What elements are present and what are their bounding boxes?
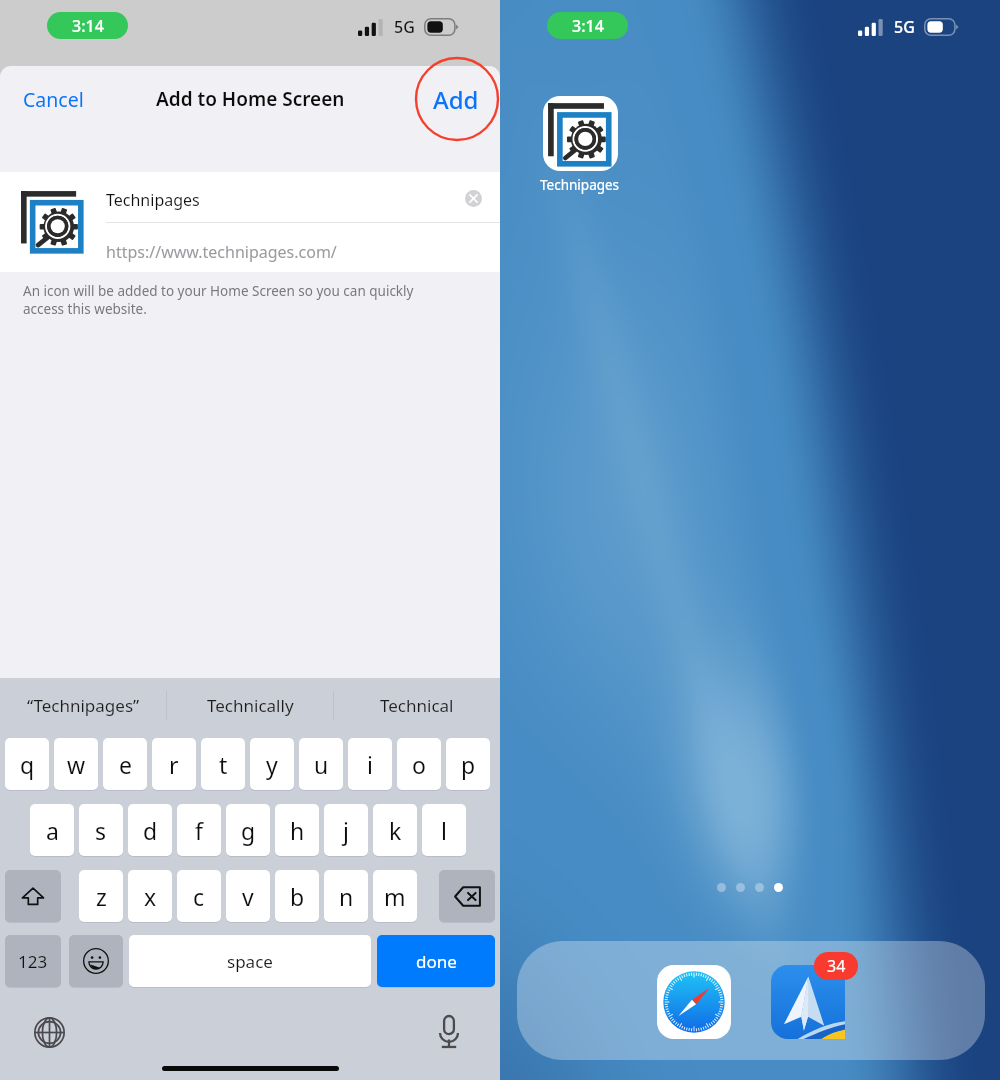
staticText: o bbox=[412, 749, 426, 780]
button[interactable]: s bbox=[79, 804, 123, 856]
button[interactable]: x bbox=[128, 870, 172, 922]
button[interactable]: v bbox=[226, 870, 270, 922]
button[interactable]: Emoji bbox=[69, 935, 123, 987]
staticText: b bbox=[290, 881, 305, 912]
staticText: i bbox=[367, 749, 373, 780]
staticText: t bbox=[219, 749, 228, 780]
button[interactable]: b bbox=[275, 870, 319, 922]
button[interactable]: q bbox=[5, 738, 49, 790]
staticText: h bbox=[290, 815, 305, 846]
staticText: https://www.technipages.com/ bbox=[106, 241, 337, 263]
staticText: 5G bbox=[894, 16, 915, 38]
button[interactable]: z bbox=[79, 870, 123, 922]
button[interactable]: y bbox=[250, 738, 294, 790]
staticText: “Technipages” bbox=[27, 694, 140, 717]
staticText: Technipages bbox=[540, 176, 620, 194]
staticText: x bbox=[144, 881, 157, 912]
button[interactable]: a bbox=[30, 804, 74, 856]
staticText: v bbox=[242, 881, 254, 912]
staticText: j bbox=[343, 815, 349, 846]
staticText: n bbox=[339, 881, 354, 912]
staticText: q bbox=[20, 749, 35, 780]
staticText: 123 bbox=[18, 950, 48, 973]
button[interactable]: Cancel bbox=[0, 78, 107, 121]
staticText: An icon will be added to your Home Scree… bbox=[23, 282, 414, 318]
staticText: s bbox=[95, 815, 107, 846]
staticText: p bbox=[461, 749, 476, 780]
button[interactable]: k bbox=[373, 804, 417, 856]
staticText: r bbox=[169, 749, 179, 780]
staticText: Add bbox=[433, 83, 479, 116]
button[interactable]: p bbox=[446, 738, 490, 790]
button[interactable]: r bbox=[152, 738, 196, 790]
staticText: 3:14 bbox=[572, 15, 604, 37]
staticText: y bbox=[266, 749, 278, 780]
staticText: e bbox=[119, 749, 132, 780]
button[interactable]: “Technipages” bbox=[0, 678, 166, 732]
staticText: space bbox=[227, 950, 273, 973]
staticText: z bbox=[96, 881, 107, 912]
staticText: g bbox=[241, 815, 256, 846]
staticText: k bbox=[389, 815, 402, 846]
button[interactable]: w bbox=[54, 738, 98, 790]
button[interactable]: Backspace bbox=[439, 870, 495, 922]
button[interactable]: l bbox=[422, 804, 466, 856]
button[interactable]: d bbox=[128, 804, 172, 856]
staticText: u bbox=[314, 749, 329, 780]
button[interactable]: o bbox=[397, 738, 441, 790]
button[interactable]: Add bbox=[413, 75, 500, 124]
staticText: Technically bbox=[207, 694, 294, 717]
staticText: 5G bbox=[394, 16, 415, 38]
staticText: a bbox=[46, 815, 59, 846]
staticText: Technical bbox=[380, 694, 454, 717]
staticText: Technipages bbox=[106, 189, 200, 211]
button[interactable]: m bbox=[373, 870, 417, 922]
button[interactable]: Technipages bbox=[505, 96, 655, 194]
button[interactable]: Switch keyboard bbox=[34, 1017, 65, 1048]
button[interactable]: Spark Mail bbox=[771, 965, 845, 1039]
staticText: 3:14 bbox=[72, 15, 104, 37]
button[interactable]: Clear text bbox=[465, 190, 482, 207]
staticText: m bbox=[384, 881, 406, 912]
staticText: Cancel bbox=[23, 86, 84, 113]
button[interactable]: g bbox=[226, 804, 270, 856]
button[interactable]: u bbox=[299, 738, 343, 790]
staticText: 34 bbox=[827, 955, 846, 977]
button[interactable]: Technical bbox=[334, 678, 500, 732]
staticText: Add to Home Screen bbox=[156, 86, 345, 112]
staticText: d bbox=[143, 815, 158, 846]
button[interactable]: Technically bbox=[167, 678, 333, 732]
staticText: c bbox=[193, 881, 205, 912]
staticText: f bbox=[195, 815, 203, 846]
button[interactable]: done bbox=[377, 935, 495, 987]
staticText: w bbox=[67, 749, 86, 780]
staticText: l bbox=[441, 815, 447, 846]
button[interactable]: space bbox=[129, 935, 371, 987]
button[interactable]: i bbox=[348, 738, 392, 790]
button[interactable]: c bbox=[177, 870, 221, 922]
staticText: done bbox=[416, 950, 457, 973]
button[interactable]: f bbox=[177, 804, 221, 856]
button[interactable]: j bbox=[324, 804, 368, 856]
button[interactable]: n bbox=[324, 870, 368, 922]
button[interactable]: h bbox=[275, 804, 319, 856]
button[interactable]: Dictation bbox=[439, 1015, 459, 1049]
button[interactable]: e bbox=[103, 738, 147, 790]
button[interactable]: Safari bbox=[657, 965, 731, 1039]
button[interactable]: 123 bbox=[5, 935, 61, 987]
button[interactable]: t bbox=[201, 738, 245, 790]
button[interactable]: Shift bbox=[5, 870, 61, 922]
